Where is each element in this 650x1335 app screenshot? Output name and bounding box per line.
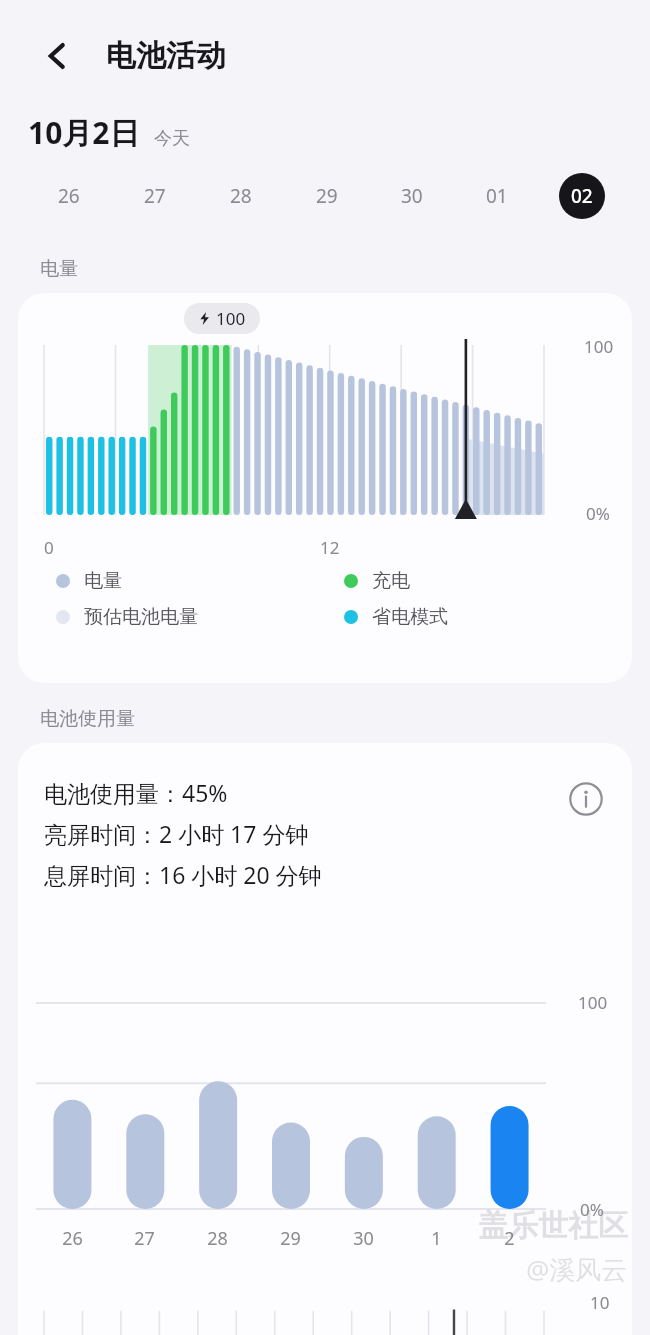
- staticText: 27: [134, 1226, 155, 1251]
- button[interactable]: 29: [284, 153, 369, 239]
- staticText: 今天: [154, 127, 190, 150]
- staticText: 电量: [40, 257, 78, 281]
- staticText: 0%: [586, 502, 610, 525]
- staticText: 100: [216, 307, 246, 330]
- staticText: 01: [486, 183, 508, 209]
- button[interactable]: 返回: [28, 27, 86, 85]
- staticText: 电池活动: [106, 37, 226, 75]
- staticText: 12: [320, 536, 340, 559]
- staticText: 100: [584, 335, 614, 358]
- staticText: 28: [230, 183, 252, 209]
- staticText: 30: [353, 1226, 374, 1251]
- staticText: 电量: [84, 569, 122, 593]
- button[interactable]: 100: [18, 293, 632, 683]
- staticText: 0%: [580, 1198, 604, 1221]
- staticText: 27: [144, 183, 166, 209]
- button[interactable]: 01: [454, 153, 539, 239]
- staticText: 26: [58, 183, 80, 209]
- staticText: 10月2日: [28, 112, 140, 153]
- button[interactable]: 02: [539, 153, 624, 239]
- button[interactable]: 27: [112, 153, 198, 239]
- staticText: 0: [44, 536, 54, 559]
- staticText: 26: [62, 1226, 83, 1251]
- staticText: 电池使用量: [40, 707, 135, 731]
- staticText: @溪风云: [526, 1251, 628, 1287]
- staticText: 省电模式: [372, 605, 448, 629]
- staticText: 电池使用量：45%: [44, 777, 228, 808]
- staticText: 28: [207, 1226, 228, 1251]
- staticText: 亮屏时间：2 小时 17 分钟: [44, 818, 309, 849]
- staticText: 30: [401, 183, 423, 209]
- staticText: 02: [571, 183, 593, 209]
- staticText: 29: [280, 1226, 301, 1251]
- button[interactable]: 26: [26, 153, 112, 239]
- staticText: 100: [578, 991, 608, 1014]
- staticText: 盖乐世社区: [478, 1207, 628, 1245]
- staticText: 29: [316, 183, 338, 209]
- staticText: 2: [504, 1226, 515, 1251]
- staticText: 10: [590, 1291, 610, 1314]
- staticText: 1: [431, 1226, 442, 1251]
- staticText: 预估电池电量: [84, 605, 198, 629]
- button[interactable]: 30: [369, 153, 454, 239]
- staticText: 息屏时间：16 小时 20 分钟: [44, 859, 322, 890]
- button[interactable]: 信息: [564, 777, 608, 821]
- button[interactable]: 28: [198, 153, 284, 239]
- staticText: 充电: [372, 569, 410, 593]
